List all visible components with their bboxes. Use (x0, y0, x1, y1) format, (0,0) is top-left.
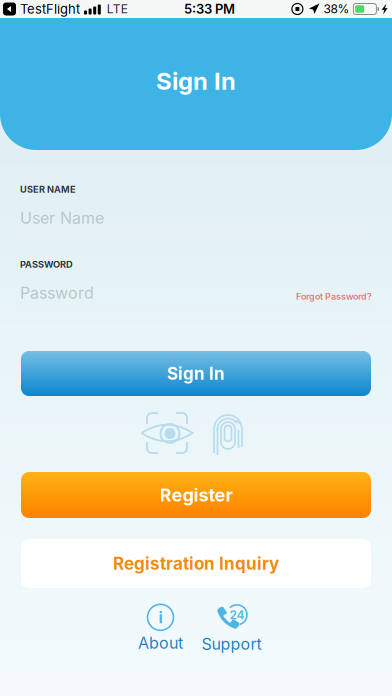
staticText: 5:33 PM (184, 1, 235, 17)
button[interactable]: Sign In (21, 351, 371, 396)
button[interactable]: Sign in with Touch ID (212, 410, 244, 456)
staticText: Register (159, 484, 232, 506)
button[interactable]: 24 (196, 604, 267, 652)
staticText: Registration Inquiry (113, 553, 279, 574)
staticText: USER NAME (20, 184, 76, 195)
staticText: Forgot Password? (296, 291, 372, 302)
button[interactable]: Registration Inquiry (21, 539, 371, 588)
staticText: PASSWORD (20, 259, 73, 270)
staticText: User Name (20, 208, 104, 228)
staticText: i (158, 608, 162, 627)
staticText: Support (201, 634, 261, 654)
button[interactable]: i (125, 604, 196, 652)
staticText: TestFlight (16, 1, 80, 17)
button[interactable]: Register (21, 472, 371, 518)
staticText: 24 (229, 608, 244, 622)
staticText: LTE (101, 2, 128, 16)
staticText: Sign In (167, 363, 225, 384)
button[interactable]: Sign in with Face ID (141, 411, 193, 455)
staticText: Password (20, 283, 94, 303)
button[interactable]: Forgot Password? (296, 291, 372, 305)
staticText: About (138, 633, 183, 653)
staticText: 38% (320, 2, 349, 16)
staticText: Sign In (156, 66, 236, 95)
